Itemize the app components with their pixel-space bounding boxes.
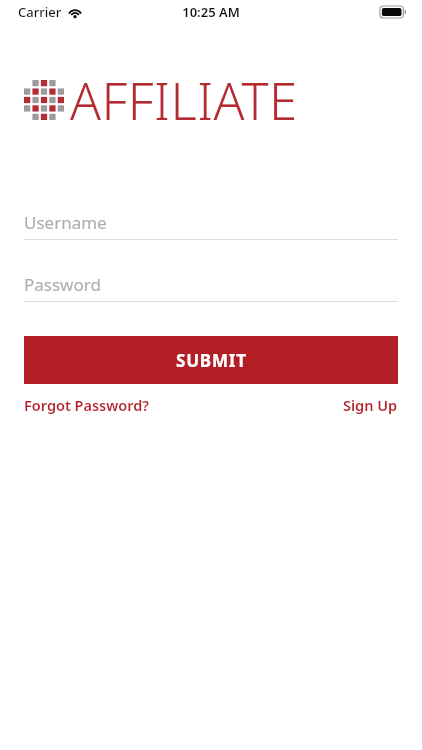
- staticText: Password: [24, 273, 101, 296]
- staticText: Forgot Password?: [24, 395, 150, 415]
- staticText: 10:25 AM: [182, 3, 240, 21]
- button[interactable]: SUBMIT: [24, 336, 398, 384]
- button[interactable]: Forgot Password?: [24, 395, 150, 415]
- staticText: Carrier: [18, 3, 62, 21]
- button[interactable]: Username: [24, 211, 398, 240]
- button[interactable]: Password: [24, 273, 398, 302]
- staticText: Sign Up: [343, 395, 398, 415]
- button[interactable]: Sign Up: [343, 395, 398, 415]
- staticText: AFFILIATE: [70, 65, 298, 134]
- staticText: Username: [24, 211, 107, 234]
- staticText: SUBMIT: [176, 349, 247, 372]
